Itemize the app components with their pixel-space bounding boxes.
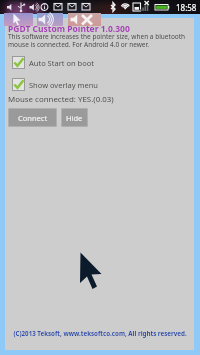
staticText: PGDT Custom Pointer 1.0.300 — [8, 23, 130, 35]
button[interactable]: Auto Start on boot — [12, 56, 94, 69]
button[interactable]: Pointer — [4, 13, 33, 26]
button[interactable]: Mute — [68, 13, 101, 26]
staticText: (C)2013 Teksoft, www.teksoftco.com, All … — [13, 329, 187, 337]
staticText: Auto Start on boot — [29, 58, 94, 68]
button[interactable]: Volume up — [37, 13, 63, 26]
staticText: Mouse connected: YES.(0.03) — [8, 94, 114, 105]
button[interactable]: Hide — [61, 108, 88, 127]
staticText: Show overlay menu — [29, 80, 98, 90]
staticText: This software increases the pointer size… — [8, 32, 192, 49]
button[interactable]: Connect — [8, 108, 57, 127]
button[interactable]: Show overlay menu — [12, 78, 98, 91]
staticText: Connect — [18, 113, 48, 123]
staticText: Hide — [66, 113, 83, 123]
staticText: 18:58 — [176, 2, 197, 13]
